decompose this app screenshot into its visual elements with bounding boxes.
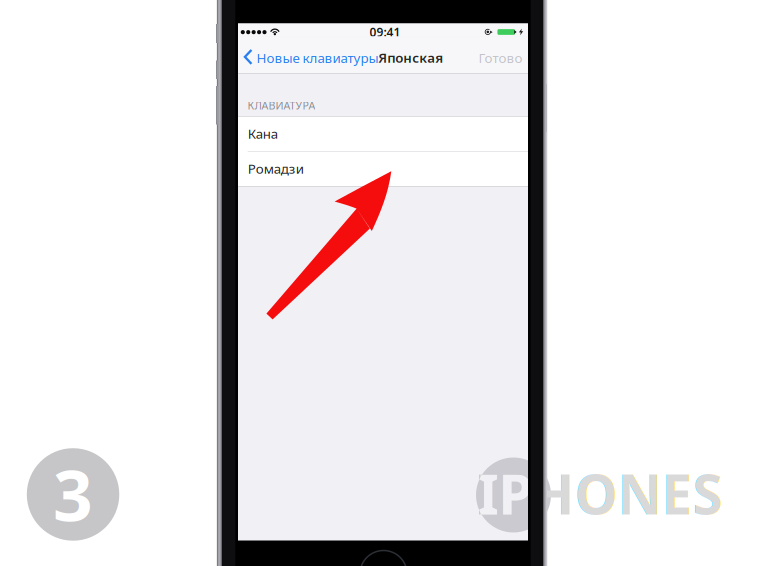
staticText: Японская (378, 49, 443, 66)
button[interactable]: Ромадзи (238, 151, 528, 186)
staticText: Кана (248, 125, 278, 142)
staticText: Новые клавиатуры (256, 49, 378, 67)
button[interactable]: Готово (473, 43, 527, 73)
staticText: КЛАВИАТУРА (247, 98, 315, 113)
staticText: IPHONES (477, 457, 722, 530)
staticText: Ромадзи (248, 160, 304, 177)
staticText: 09:41 (370, 24, 401, 40)
staticText: 3 (53, 448, 93, 540)
staticText: IPHONES (477, 457, 722, 530)
button[interactable]: Кана (238, 116, 528, 151)
staticText: Готово (478, 49, 522, 67)
button[interactable]: Новые клавиатуры (238, 36, 362, 74)
